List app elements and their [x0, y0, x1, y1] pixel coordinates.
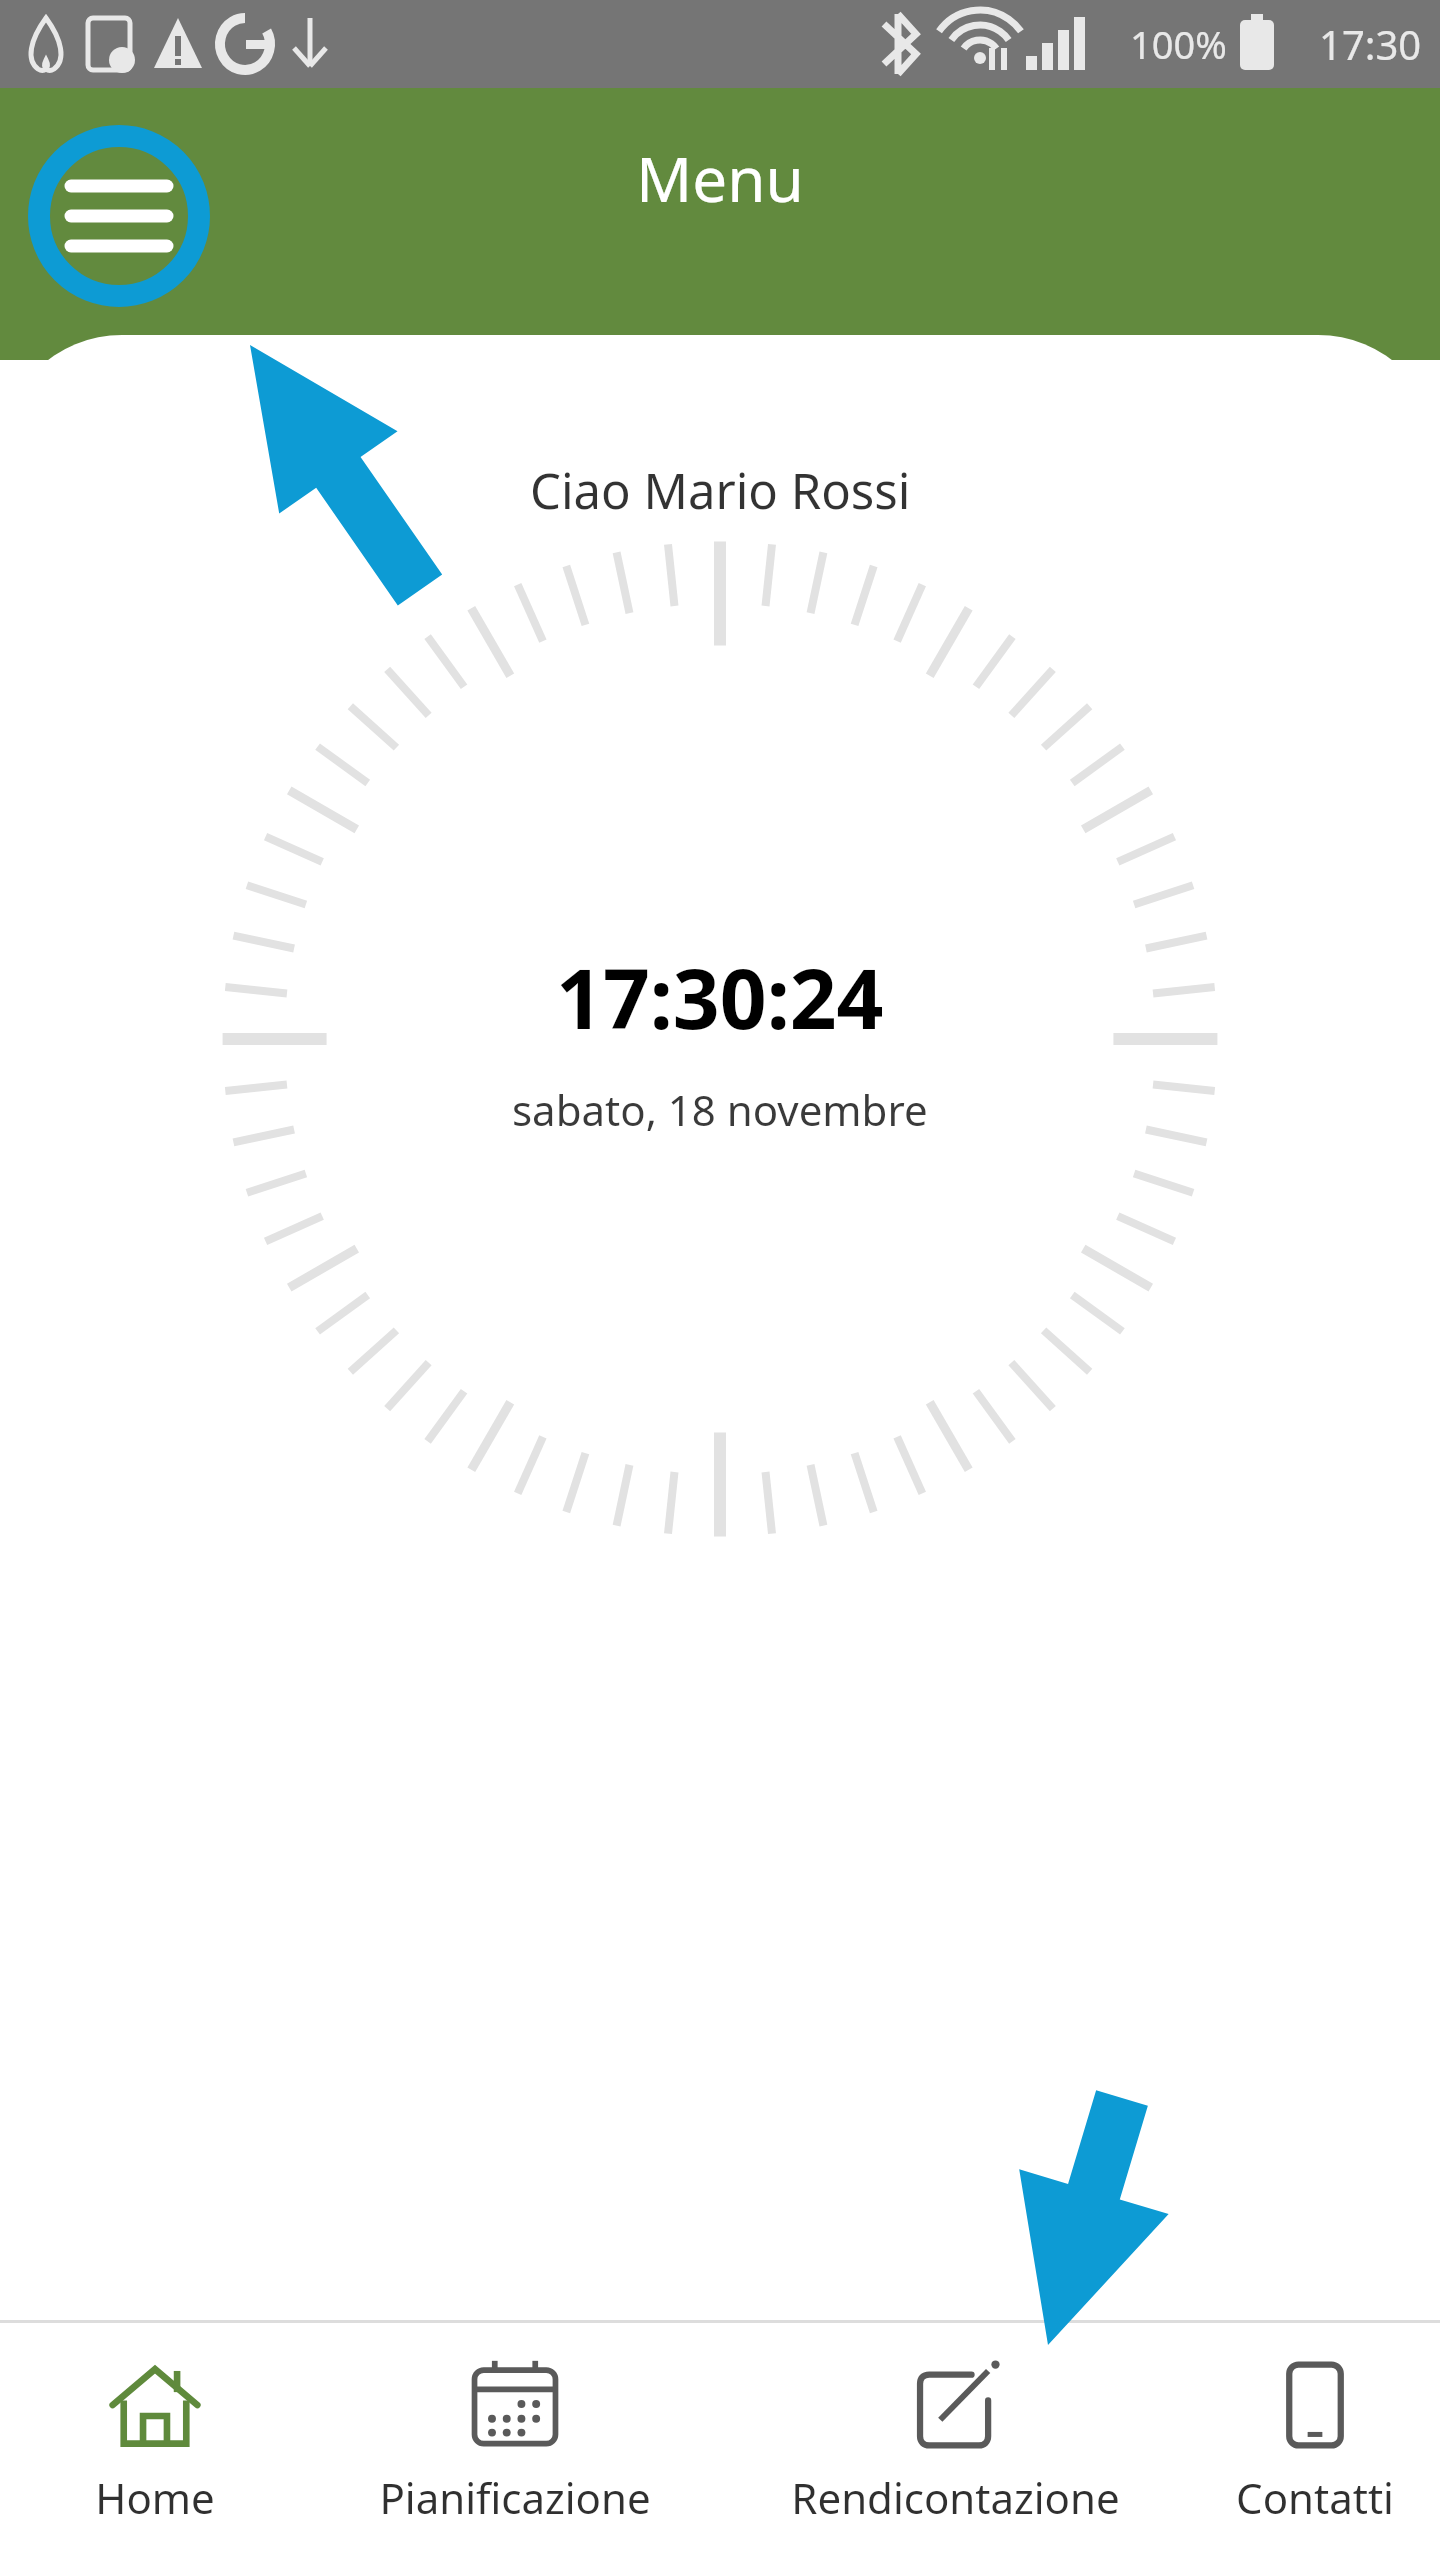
button[interactable]: Pianificazione [310, 2323, 720, 2560]
staticText: sabato, 18 novembre [512, 1081, 928, 1138]
staticText: Rendicontazione [791, 2469, 1120, 2526]
staticText: Menu [636, 136, 804, 220]
button[interactable]: Menu [28, 125, 210, 307]
button[interactable]: Rendicontazione [720, 2323, 1190, 2560]
staticText: Pianificazione [379, 2469, 651, 2526]
staticText: 17:30:24 [556, 941, 884, 1053]
staticText: Ciao Mario Rossi [530, 457, 911, 524]
staticText: 100% [1130, 18, 1227, 70]
staticText: 17:30 [1319, 17, 1422, 71]
staticText: Contatti [1236, 2469, 1394, 2526]
staticText: Home [95, 2469, 215, 2526]
button[interactable]: Contatti [1190, 2323, 1440, 2560]
button[interactable]: Home [0, 2323, 310, 2560]
